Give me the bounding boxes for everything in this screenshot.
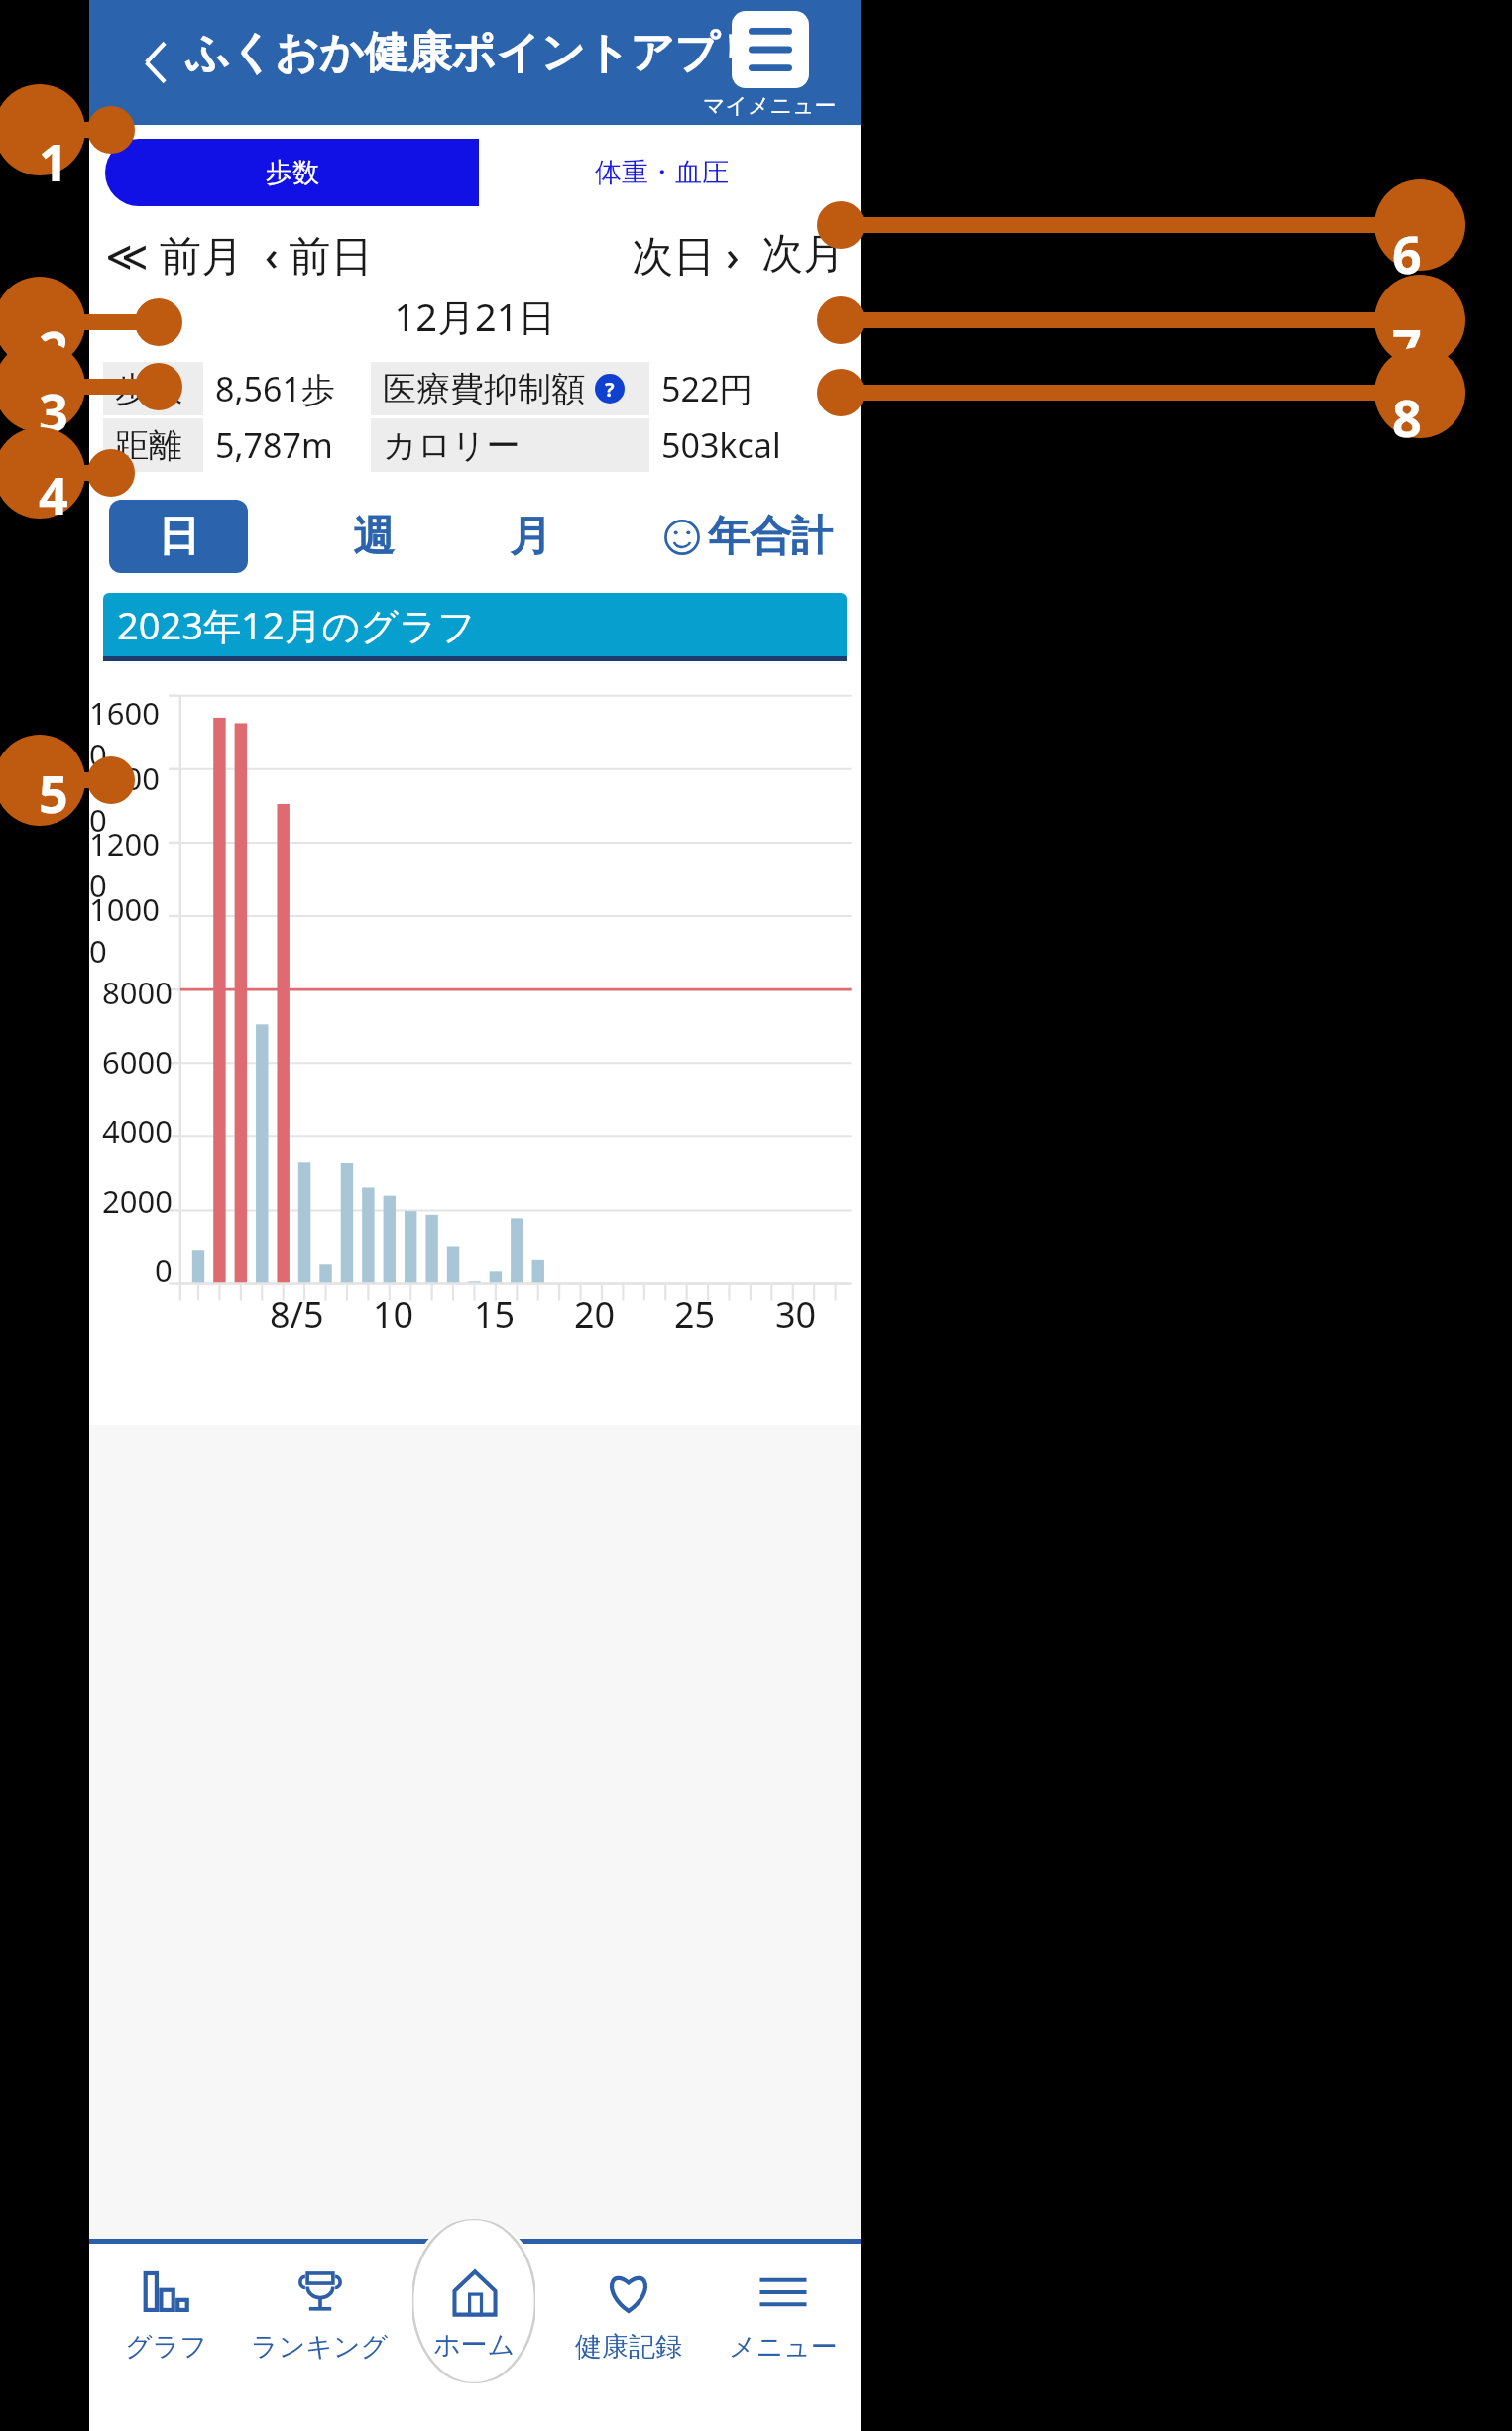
staticText: 10 <box>373 1290 414 1338</box>
staticText: 5,787m <box>215 422 333 468</box>
staticText: 歩数 <box>266 156 319 189</box>
staticText: 8,561歩 <box>215 366 335 411</box>
staticText: 4 <box>39 459 68 529</box>
staticText: 1 <box>39 126 68 196</box>
staticText: 次日 › <box>632 226 740 283</box>
staticText: 8 <box>1392 382 1422 452</box>
staticText: 医療費抑制額 <box>383 368 585 410</box>
staticText: 体重・血圧 <box>595 156 729 189</box>
staticText: 4000 <box>102 1110 173 1152</box>
staticText: 3 <box>39 376 68 446</box>
staticText: 日 <box>158 511 199 563</box>
staticText: 10000 <box>89 888 173 972</box>
staticText: グラフ <box>125 2330 207 2364</box>
button[interactable]: 日 <box>109 500 248 573</box>
staticText: ランキング <box>251 2330 389 2364</box>
staticText: メニュー <box>729 2330 838 2364</box>
button[interactable]: メニュー <box>706 2260 861 2368</box>
staticText: 健康記録 <box>575 2330 682 2364</box>
button[interactable]: マイメニュー <box>703 11 837 120</box>
button[interactable]: ランキング <box>243 2260 397 2368</box>
staticText: 0 <box>155 1249 173 1291</box>
button[interactable]: グラフ <box>89 2260 243 2368</box>
staticText: 2 <box>39 313 68 384</box>
staticText: 8000 <box>102 972 173 1013</box>
staticText: 距離 <box>115 424 182 467</box>
staticText: ホーム <box>433 2328 516 2362</box>
button[interactable]: ≪ 前月 <box>101 222 247 287</box>
staticText: 14000 <box>89 757 173 841</box>
staticText: 5 <box>39 757 68 828</box>
staticText: 2023年12月のグラフ <box>117 599 476 650</box>
button[interactable]: 次日 › <box>628 222 744 287</box>
staticText: 15 <box>474 1290 516 1338</box>
button[interactable]: 体重・血圧 <box>479 139 845 206</box>
staticText: 月 <box>510 511 551 563</box>
staticText: 20 <box>574 1290 616 1338</box>
staticText: ≪ 前月 <box>105 226 243 283</box>
staticText: 12月21日 <box>89 290 861 342</box>
button[interactable]: 歩数 <box>105 139 479 206</box>
button[interactable]: ‹ 前日 <box>261 222 377 287</box>
staticText: 7 <box>1392 311 1422 382</box>
staticText: 年合計 <box>708 511 833 563</box>
staticText: 8/5 <box>270 1290 324 1338</box>
button[interactable]: 次月 <box>757 224 849 285</box>
staticText: 503kcal <box>661 422 781 468</box>
button[interactable]: ホーム <box>397 2260 551 2425</box>
staticText: 2000 <box>102 1180 173 1221</box>
staticText: ? <box>605 376 615 403</box>
button[interactable]: 戻る <box>111 25 186 100</box>
button[interactable]: 年合計 <box>656 503 841 571</box>
staticText: 30 <box>775 1290 817 1338</box>
staticText: 週 <box>353 511 395 563</box>
staticText: ふくおか健康ポイントアプリ <box>185 26 764 80</box>
staticText: 12000 <box>89 823 173 906</box>
staticText: 522円 <box>661 366 754 411</box>
button[interactable]: ヘルプ <box>595 374 625 404</box>
staticText: 次月 <box>761 228 845 281</box>
staticText: カロリー <box>383 424 521 467</box>
staticText: 25 <box>674 1290 716 1338</box>
staticText: 歩数 <box>115 368 182 410</box>
button[interactable]: 月 <box>500 501 561 573</box>
staticText: 6 <box>1392 218 1422 289</box>
staticText: 16000 <box>89 692 173 775</box>
button[interactable]: 週 <box>343 501 405 573</box>
staticText: ‹ 前日 <box>265 226 373 283</box>
staticText: マイメニュー <box>703 92 837 120</box>
button[interactable]: 健康記録 <box>551 2260 706 2368</box>
staticText: 6000 <box>102 1041 173 1083</box>
